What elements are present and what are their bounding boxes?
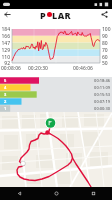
staticText: 2 xyxy=(4,99,7,104)
staticText: 00:15:53 xyxy=(78,92,110,97)
staticText: 129 xyxy=(0,47,10,54)
staticText: 166 xyxy=(0,33,10,40)
staticText: 50 xyxy=(102,60,112,67)
button[interactable]: Recents xyxy=(75,187,112,200)
staticText: 147 xyxy=(0,40,10,47)
staticText: 70 xyxy=(102,47,112,54)
staticText: 60 xyxy=(102,54,112,61)
button[interactable]: Home xyxy=(38,187,75,200)
staticText: 92 xyxy=(0,60,10,67)
staticText: P xyxy=(40,9,47,20)
button[interactable]: Share xyxy=(97,9,112,20)
staticText: 00:00:30 xyxy=(78,106,110,111)
staticText: 00:46:06 xyxy=(73,65,93,72)
staticText: 00:07:19 xyxy=(78,99,110,104)
staticText: 4 xyxy=(4,85,7,90)
staticText: 90 xyxy=(102,33,112,40)
staticText: 5 xyxy=(4,78,7,83)
staticText: 00:11:09 xyxy=(78,85,110,90)
button[interactable]: Back xyxy=(0,9,15,20)
staticText: 1 xyxy=(4,106,7,111)
staticText: 100 xyxy=(102,26,112,33)
staticText: 00:08:06 xyxy=(1,65,21,72)
staticText: 00:20:30 xyxy=(28,65,48,72)
staticText: 00:18:46 xyxy=(78,78,110,83)
staticText: 110 xyxy=(0,54,10,61)
button[interactable]: Back xyxy=(0,187,38,200)
staticText: 80 xyxy=(102,40,112,47)
staticText: 3 xyxy=(4,92,7,97)
staticText: 184 xyxy=(0,26,10,33)
staticText: LAR xyxy=(52,9,72,20)
